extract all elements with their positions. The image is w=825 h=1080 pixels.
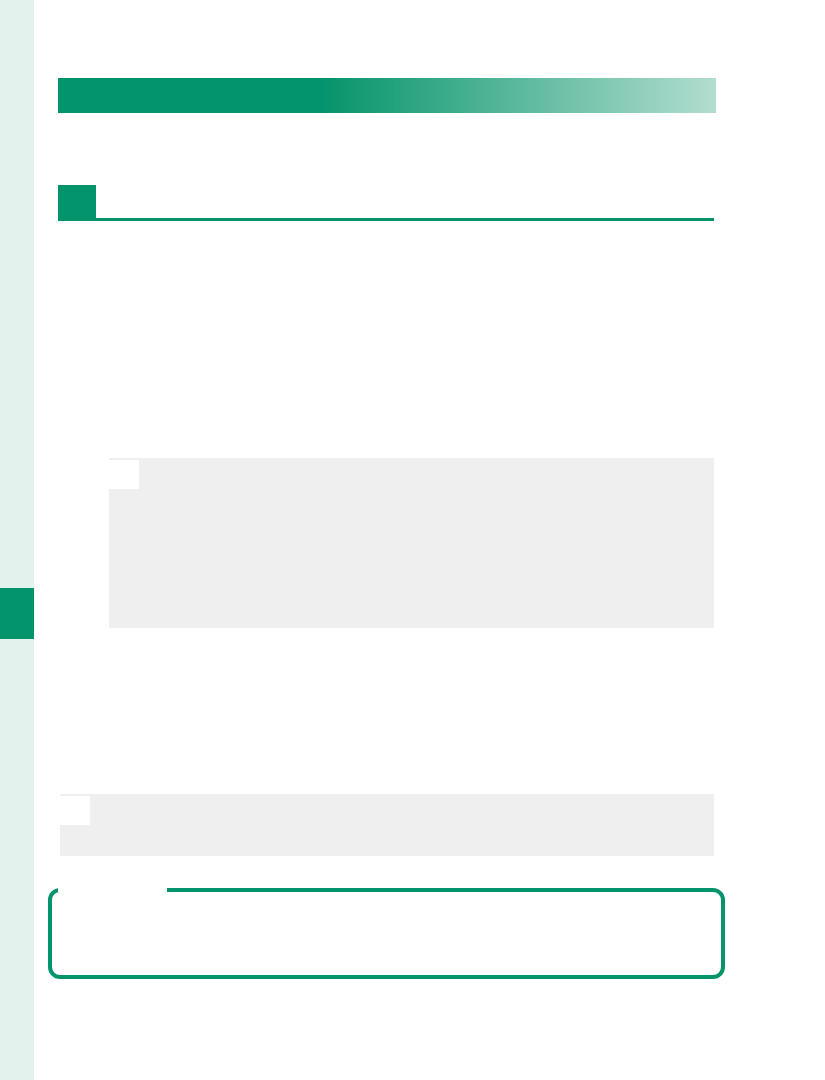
button[interactable]: Outlined field: [48, 888, 725, 979]
button[interactable]: Title banner: [58, 78, 716, 113]
